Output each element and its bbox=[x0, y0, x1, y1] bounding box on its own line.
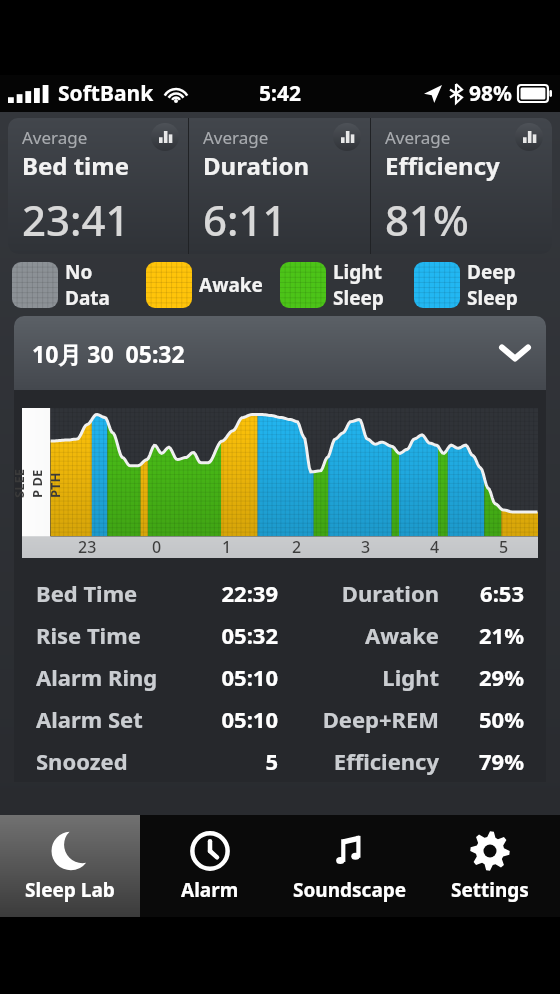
staticText: Light bbox=[333, 259, 382, 285]
staticText: Average bbox=[22, 126, 88, 149]
staticText: SoftBank bbox=[58, 79, 154, 108]
staticText: No bbox=[65, 259, 93, 285]
staticText: 3 bbox=[361, 536, 371, 558]
staticText: Sleep bbox=[467, 285, 518, 311]
staticText: Sleep Lab bbox=[25, 877, 115, 903]
button[interactable]: Soundscape bbox=[280, 815, 420, 917]
staticText: 6:11 bbox=[203, 191, 287, 248]
staticText: Average bbox=[385, 126, 451, 149]
button[interactable]: Alarm bbox=[140, 815, 280, 917]
staticText: 4 bbox=[430, 536, 440, 558]
staticText: Alarm Set bbox=[36, 704, 175, 734]
staticText: Snoozed bbox=[36, 746, 175, 776]
staticText: 79% bbox=[451, 746, 524, 776]
button[interactable]: Settings bbox=[420, 815, 560, 917]
button[interactable]: Awake bbox=[146, 262, 280, 308]
staticText: 5 bbox=[499, 536, 509, 558]
staticText: 29% bbox=[451, 662, 524, 692]
button[interactable]: Light bbox=[280, 259, 414, 311]
staticText: 05:10 bbox=[175, 662, 278, 692]
staticText: Soundscape bbox=[293, 877, 407, 903]
staticText: 05:32 bbox=[175, 620, 278, 650]
staticText: Sleep bbox=[333, 285, 384, 311]
button[interactable]: Alarm Ring bbox=[14, 656, 546, 698]
button[interactable]: Sleep Lab bbox=[0, 815, 140, 917]
staticText: Duration bbox=[203, 149, 309, 182]
staticText: Average bbox=[203, 126, 269, 149]
staticText: Light bbox=[288, 662, 439, 692]
staticText: Efficiency bbox=[288, 746, 439, 776]
staticText: 21% bbox=[451, 620, 524, 650]
button[interactable]: Alarm Set bbox=[14, 698, 546, 740]
button[interactable]: Average bbox=[8, 118, 188, 254]
staticText: 23 bbox=[78, 536, 97, 558]
staticText: Rise Time bbox=[36, 620, 175, 650]
staticText: 05:10 bbox=[175, 704, 278, 734]
staticText: 2 bbox=[292, 536, 302, 558]
staticText: 5 bbox=[175, 746, 278, 776]
staticText: 98% bbox=[469, 79, 512, 108]
button[interactable]: Snoozed bbox=[14, 740, 546, 782]
staticText: Alarm Ring bbox=[36, 662, 175, 692]
button[interactable]: Deep bbox=[414, 259, 548, 311]
button[interactable]: No bbox=[12, 259, 146, 311]
button[interactable]: Bed Time bbox=[14, 572, 546, 614]
staticText: Awake bbox=[288, 620, 439, 650]
staticText: Deep bbox=[467, 259, 516, 285]
button[interactable]: Bed time chart bbox=[151, 123, 179, 151]
button[interactable]: Average bbox=[371, 118, 552, 254]
staticText: 10月 30 05:32 bbox=[32, 338, 185, 369]
staticText: 22:39 bbox=[175, 578, 278, 608]
staticText: 50% bbox=[451, 704, 524, 734]
staticText: Duration bbox=[288, 578, 439, 608]
staticText: Bed Time bbox=[36, 578, 175, 608]
staticText: 81% bbox=[385, 191, 469, 248]
staticText: Data bbox=[65, 285, 110, 311]
staticText: Efficiency bbox=[385, 149, 500, 182]
button[interactable]: Efficiency chart bbox=[515, 123, 543, 151]
staticText: Deep+REM bbox=[288, 704, 439, 734]
staticText: Settings bbox=[451, 877, 529, 903]
staticText: 23:41 bbox=[22, 191, 130, 248]
staticText: 1 bbox=[222, 536, 232, 558]
staticText: Awake bbox=[199, 272, 263, 298]
staticText: SLEEP DEPTH bbox=[14, 468, 64, 498]
staticText: 6:53 bbox=[451, 578, 524, 608]
staticText: Bed time bbox=[22, 149, 130, 182]
button[interactable]: Duration chart bbox=[333, 123, 361, 151]
staticText: 5:42 bbox=[259, 79, 301, 108]
button[interactable]: Rise Time bbox=[14, 614, 546, 656]
staticText: Alarm bbox=[181, 877, 239, 903]
button[interactable]: 10月 30 05:32 bbox=[14, 316, 546, 390]
button[interactable]: Average bbox=[189, 118, 370, 254]
staticText: 0 bbox=[152, 536, 162, 558]
